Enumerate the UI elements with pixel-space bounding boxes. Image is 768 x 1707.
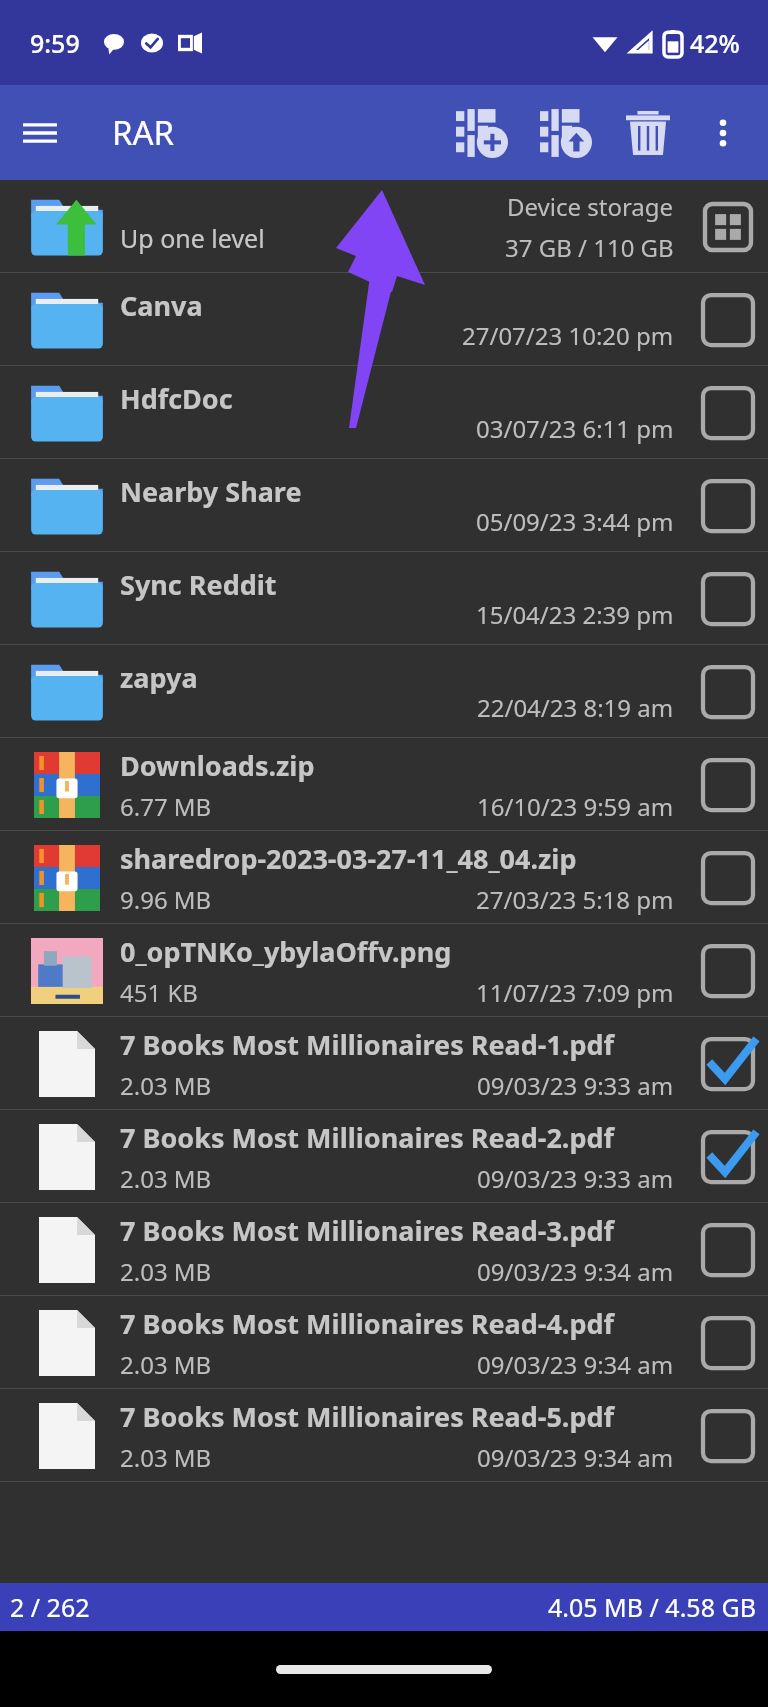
- staticText: 2.03 MB: [120, 1069, 212, 1102]
- staticText: 0_opTNKo_ybylaOffv.png: [120, 933, 452, 970]
- button[interactable]: 7 Books Most Millionaires Read-2.pdf: [0, 1110, 768, 1203]
- button[interactable]: Menu: [0, 93, 80, 173]
- staticText: 11/07/23 7:09 pm: [476, 976, 674, 1009]
- staticText: HdfcDoc: [120, 380, 233, 417]
- staticText: 09/03/23 9:33 am: [477, 1162, 674, 1195]
- staticText: 2 / 262: [10, 1590, 90, 1624]
- button[interactable]: Select: [688, 1396, 768, 1476]
- staticText: 2.03 MB: [120, 1441, 212, 1474]
- button[interactable]: Select: [688, 466, 768, 546]
- staticText: 7 Books Most Millionaires Read-4.pdf: [120, 1305, 615, 1342]
- staticText: 15/04/23 2:39 pm: [476, 598, 674, 631]
- staticText: Device storage: [507, 190, 674, 223]
- button[interactable]: Canva: [0, 273, 768, 366]
- button[interactable]: Add to archive: [440, 91, 524, 175]
- staticText: 27/07/23 10:20 pm: [462, 319, 674, 352]
- button[interactable]: Downloads.zip: [0, 738, 768, 831]
- staticText: 2.03 MB: [120, 1162, 212, 1195]
- staticText: 37 GB / 110 GB: [505, 231, 674, 264]
- button[interactable]: Delete: [608, 93, 688, 173]
- button[interactable]: Extract archive: [524, 91, 608, 175]
- staticText: 05/09/23 3:44 pm: [476, 505, 674, 538]
- staticText: 03/07/23 6:11 pm: [476, 412, 674, 445]
- button[interactable]: Nearby Share: [0, 459, 768, 552]
- staticText: Downloads.zip: [120, 747, 315, 784]
- staticText: Up one level: [120, 221, 265, 255]
- staticText: 42%: [690, 26, 740, 60]
- button[interactable]: zapya: [0, 645, 768, 738]
- staticText: 09/03/23 9:34 am: [477, 1441, 674, 1474]
- button[interactable]: 7 Books Most Millionaires Read-3.pdf: [0, 1203, 768, 1296]
- button[interactable]: 7 Books Most Millionaires Read-5.pdf: [0, 1389, 768, 1482]
- staticText: 09/03/23 9:34 am: [477, 1255, 674, 1288]
- button[interactable]: sharedrop-2023-03-27-11_48_04.zip: [0, 831, 768, 924]
- staticText: 2.03 MB: [120, 1348, 212, 1381]
- button[interactable]: Select: [688, 652, 768, 732]
- staticText: 22/04/23 8:19 am: [477, 691, 674, 724]
- button[interactable]: Select: [688, 745, 768, 825]
- staticText: zapya: [120, 659, 198, 696]
- button[interactable]: Selected: [688, 1117, 768, 1197]
- button[interactable]: Select: [688, 280, 768, 360]
- button[interactable]: Select: [688, 559, 768, 639]
- button[interactable]: 0_opTNKo_ybylaOffv.png: [0, 924, 768, 1017]
- staticText: Sync Reddit: [120, 566, 277, 603]
- staticText: 4.05 MB / 4.58 GB: [548, 1590, 756, 1624]
- staticText: 2.03 MB: [120, 1255, 212, 1288]
- staticText: 09/03/23 9:34 am: [477, 1348, 674, 1381]
- staticText: Canva: [120, 287, 203, 324]
- button[interactable]: Selected: [688, 1024, 768, 1104]
- button[interactable]: Up one level: [0, 180, 768, 273]
- button[interactable]: HdfcDoc: [0, 366, 768, 459]
- button[interactable]: Grid view: [688, 187, 768, 267]
- button[interactable]: Select: [688, 838, 768, 918]
- staticText: 7 Books Most Millionaires Read-2.pdf: [120, 1119, 615, 1156]
- staticText: 9:59: [30, 26, 80, 60]
- button[interactable]: 7 Books Most Millionaires Read-4.pdf: [0, 1296, 768, 1389]
- button[interactable]: Select: [688, 1303, 768, 1383]
- staticText: RAR: [112, 110, 175, 155]
- staticText: sharedrop-2023-03-27-11_48_04.zip: [120, 840, 577, 877]
- staticText: 27/03/23 5:18 pm: [476, 883, 674, 916]
- button[interactable]: Sync Reddit: [0, 552, 768, 645]
- button[interactable]: Select: [688, 931, 768, 1011]
- button[interactable]: Select: [688, 1210, 768, 1290]
- staticText: 7 Books Most Millionaires Read-1.pdf: [120, 1026, 615, 1063]
- staticText: 9.96 MB: [120, 883, 212, 916]
- staticText: 6.77 MB: [120, 790, 212, 823]
- staticText: 7 Books Most Millionaires Read-3.pdf: [120, 1212, 615, 1249]
- staticText: Nearby Share: [120, 473, 302, 510]
- staticText: 09/03/23 9:33 am: [477, 1069, 674, 1102]
- button[interactable]: Select: [688, 373, 768, 453]
- button[interactable]: 7 Books Most Millionaires Read-1.pdf: [0, 1017, 768, 1110]
- staticText: 7 Books Most Millionaires Read-5.pdf: [120, 1398, 615, 1435]
- staticText: 16/10/23 9:59 am: [477, 790, 674, 823]
- button[interactable]: More options: [688, 98, 758, 168]
- staticText: 451 KB: [120, 976, 198, 1009]
